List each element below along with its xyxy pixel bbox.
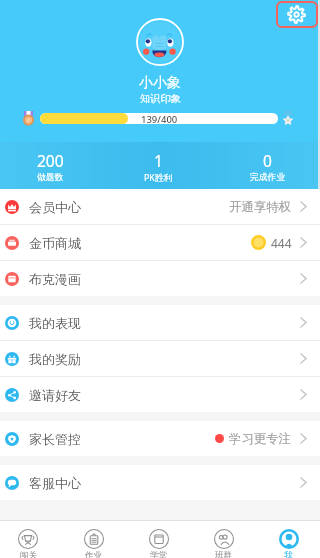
button[interactable]: 0 <box>213 142 320 189</box>
button[interactable]: 200 <box>0 142 104 189</box>
button[interactable]: 作业 <box>61 521 126 558</box>
button[interactable]: 布克漫画 <box>0 261 320 296</box>
button[interactable]: 学堂 <box>126 521 191 558</box>
staticText: 班群 <box>215 550 232 558</box>
button[interactable]: 1 <box>104 142 213 189</box>
staticText: 444 <box>271 235 292 251</box>
staticText: 家长管控 <box>29 431 81 447</box>
button[interactable]: 闯关 <box>0 521 61 558</box>
button[interactable]: 家长管控 <box>0 421 320 456</box>
staticText: 开通享特权 <box>229 199 291 215</box>
staticText: 我的表现 <box>29 315 81 331</box>
staticText: 0 <box>263 150 272 171</box>
staticText: 200 <box>37 150 64 171</box>
staticText: 我 <box>284 550 293 558</box>
staticText: PK胜利 <box>144 172 173 184</box>
staticText: 139/400 <box>141 113 178 124</box>
staticText: 知识印象 <box>140 92 181 105</box>
staticText: 金币商城 <box>29 235 81 251</box>
button[interactable]: 邀请好友 <box>0 377 320 412</box>
staticText: 学堂 <box>150 550 167 558</box>
button[interactable]: 客服中心 <box>0 465 320 500</box>
staticText: 闯关 <box>20 550 37 558</box>
button[interactable]: 班群 <box>191 521 256 558</box>
staticText: 客服中心 <box>29 475 81 491</box>
staticText: 小小象 <box>139 74 181 92</box>
button[interactable]: 我的表现 <box>0 305 320 340</box>
staticText: 做题数 <box>37 172 64 183</box>
button[interactable]: 会员中心 <box>0 189 320 224</box>
button[interactable]: 我 <box>256 521 320 558</box>
staticText: 会员中心 <box>29 199 81 215</box>
staticText: 1 <box>154 150 163 171</box>
button[interactable]: Settings <box>287 5 306 24</box>
staticText: 作业 <box>85 550 102 558</box>
staticText: 完成作业 <box>250 172 286 183</box>
button[interactable]: 金币商城 <box>0 225 320 260</box>
button[interactable]: 我的奖励 <box>0 341 320 376</box>
staticText: 布克漫画 <box>29 271 81 287</box>
staticText: 学习更专注 <box>229 431 291 447</box>
staticText: 邀请好友 <box>29 387 81 403</box>
staticText: 我的奖励 <box>29 351 81 367</box>
